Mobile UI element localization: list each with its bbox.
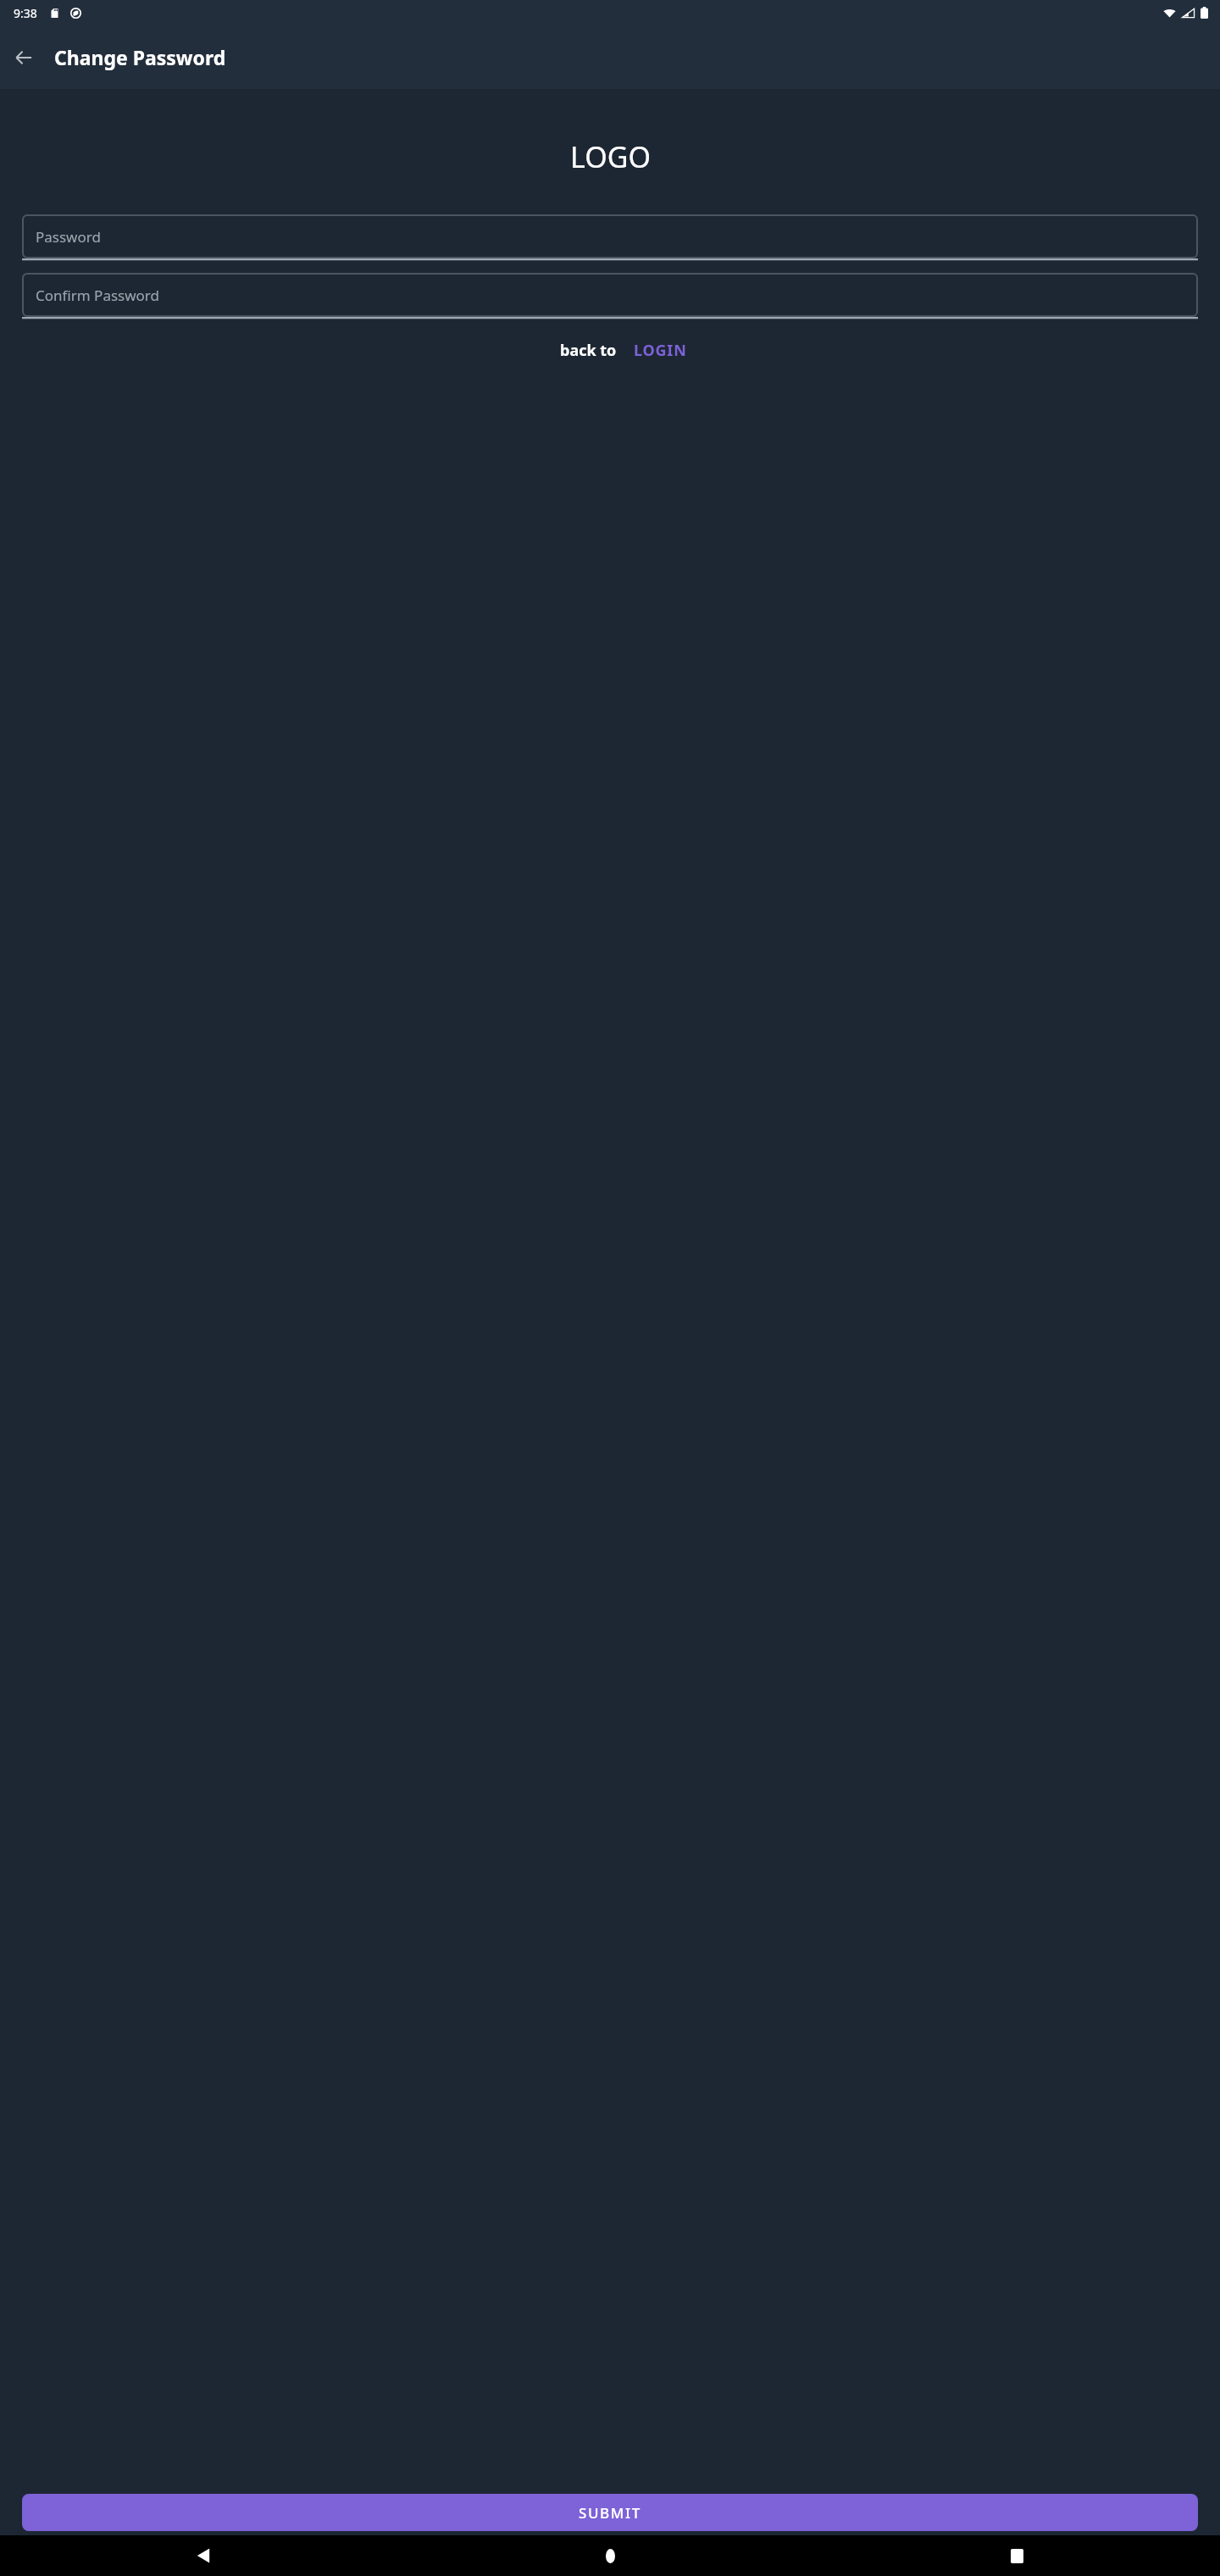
staticText: LOGO xyxy=(570,137,651,176)
staticText: Change Password xyxy=(54,44,226,70)
button[interactable]: SUBMIT xyxy=(22,2494,1198,2531)
staticText: SUBMIT xyxy=(579,2503,641,2523)
button[interactable]: LOGIN xyxy=(632,335,689,366)
button[interactable]: back to xyxy=(558,335,618,366)
staticText: 9:38 xyxy=(14,5,37,21)
button[interactable]: Back xyxy=(0,2535,407,2576)
staticText: Password xyxy=(36,227,101,247)
button[interactable]: Password xyxy=(22,214,1198,261)
button[interactable]: Home xyxy=(407,2535,813,2576)
button[interactable]: Back xyxy=(3,37,44,78)
button[interactable]: Confirm Password xyxy=(22,273,1198,319)
staticText: Confirm Password xyxy=(36,286,159,305)
button[interactable]: Recent apps xyxy=(813,2535,1220,2576)
